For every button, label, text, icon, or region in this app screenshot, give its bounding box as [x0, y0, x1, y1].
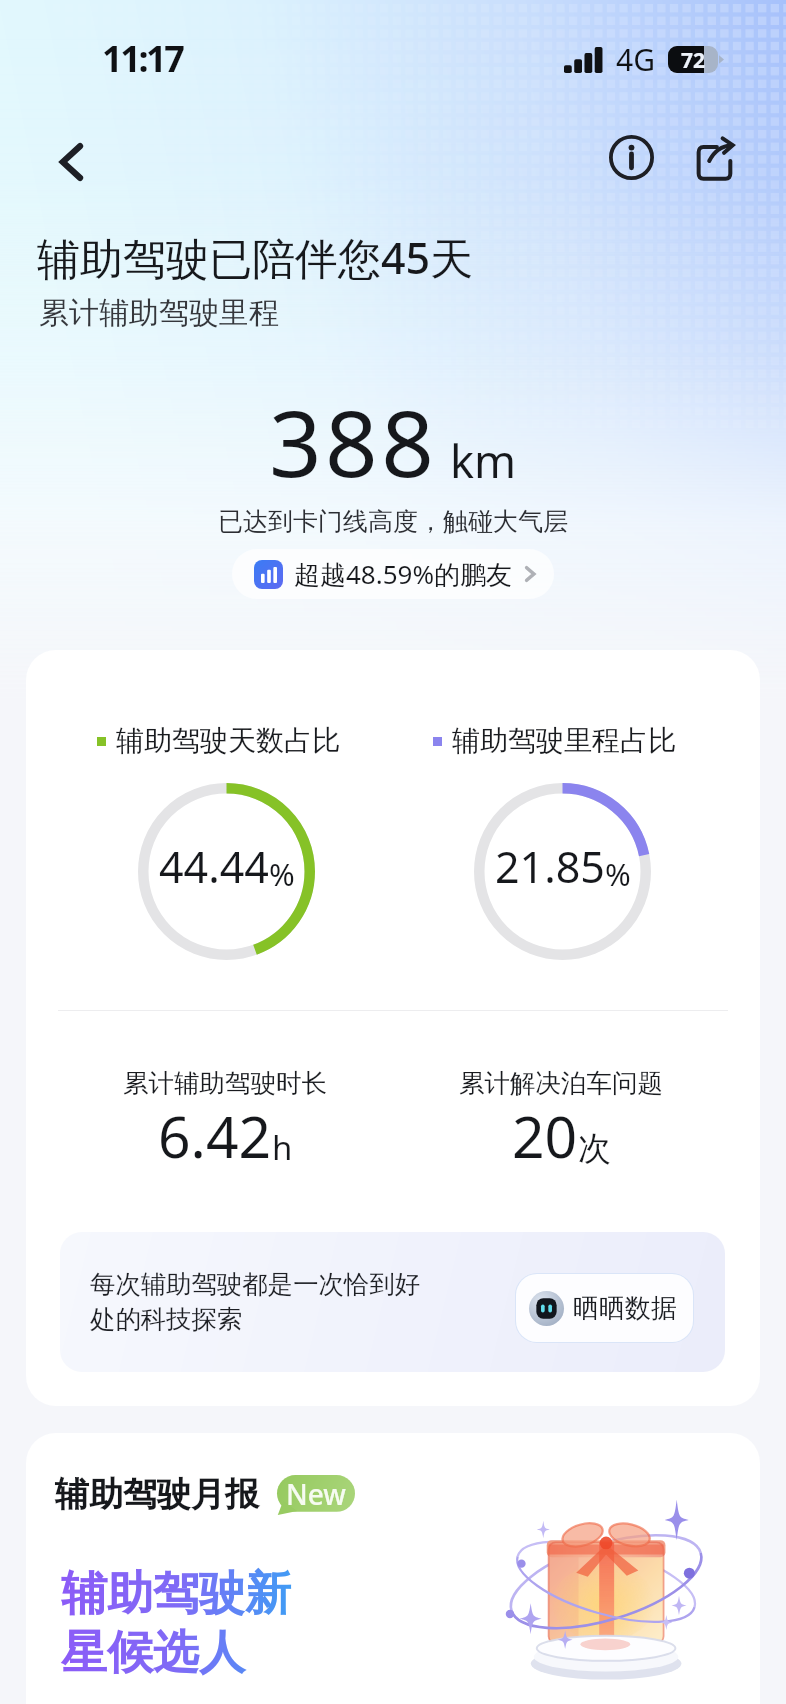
staticText: 72: [681, 46, 706, 73]
staticText: 4G: [616, 39, 655, 80]
button[interactable]: Back: [39, 131, 101, 193]
staticText: New: [286, 1475, 346, 1512]
staticText: 21.85: [495, 837, 605, 896]
staticText: 星候选人: [61, 1624, 245, 1682]
button[interactable]: Share: [683, 130, 745, 192]
staticText: 辅助驾驶天数占比: [116, 723, 340, 758]
staticText: 超越48.59%的鹏友: [294, 556, 513, 592]
staticText: 辅助驾驶已陪伴您45天: [37, 228, 474, 287]
staticText: km: [450, 430, 517, 491]
staticText: 晒晒数据: [573, 1292, 677, 1325]
staticText: 每次辅助驾驶都是一次恰到好: [90, 1269, 421, 1301]
staticText: 次: [578, 1128, 611, 1170]
staticText: 累计解决泊车问题: [459, 1067, 663, 1099]
staticText: %: [605, 853, 631, 895]
staticText: 44.44: [159, 837, 269, 896]
staticText: 已达到卡门线高度，触碰大气层: [218, 506, 568, 537]
button[interactable]: Info: [600, 126, 662, 188]
staticText: h: [272, 1125, 293, 1170]
staticText: 11:17: [102, 34, 183, 83]
staticText: 辅助驾驶里程占比: [452, 723, 676, 758]
staticText: 累计辅助驾驶时长: [123, 1067, 327, 1099]
button[interactable]: 辅助驾驶月报 辅助驾驶新星候选人: [26, 1433, 760, 1704]
staticText: 累计辅助驾驶里程: [39, 294, 279, 332]
staticText: %: [269, 853, 295, 895]
staticText: 20: [512, 1097, 578, 1175]
staticText: 处的科技探索: [90, 1304, 243, 1336]
button[interactable]: 晒晒数据: [516, 1274, 693, 1342]
staticText: 辅助驾驶新: [61, 1565, 291, 1623]
staticText: 388: [269, 379, 438, 504]
button[interactable]: 超越48.59%的鹏友: [232, 549, 554, 599]
staticText: 辅助驾驶月报: [55, 1473, 259, 1516]
staticText: 6.42: [158, 1097, 272, 1175]
